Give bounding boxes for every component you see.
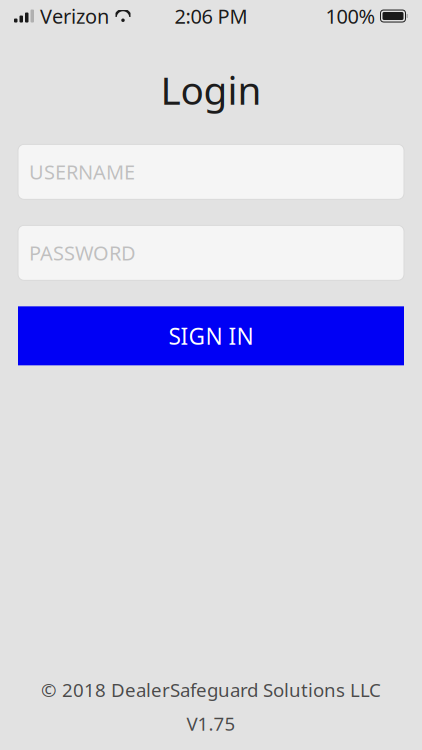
button[interactable]: PASSWORD xyxy=(18,225,404,280)
staticText: Verizon xyxy=(40,3,109,29)
button[interactable]: SIGN IN xyxy=(18,306,404,365)
staticText: V1.75 xyxy=(186,711,235,736)
staticText: 100% xyxy=(325,3,375,29)
staticText: 2:06 PM xyxy=(174,3,247,29)
button[interactable]: USERNAME xyxy=(18,144,404,199)
staticText: PASSWORD xyxy=(29,240,136,266)
staticText: SIGN IN xyxy=(168,321,253,351)
staticText: © 2018 DealerSafeguard Solutions LLC xyxy=(41,677,381,702)
staticText: USERNAME xyxy=(29,159,135,185)
staticText: Login xyxy=(160,64,261,115)
